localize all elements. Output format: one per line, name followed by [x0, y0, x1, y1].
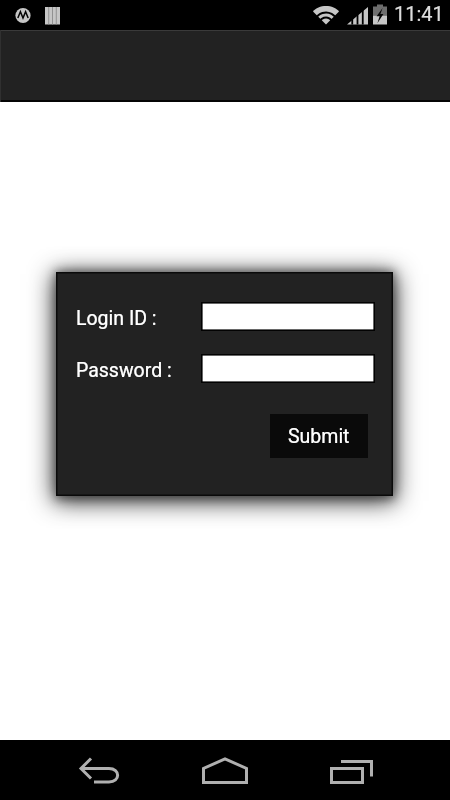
button[interactable]: Password input — [201, 354, 375, 383]
button[interactable]: Back — [0, 740, 150, 800]
button[interactable]: App bar — [0, 30, 450, 102]
staticText: Password : — [76, 359, 172, 382]
button[interactable]: Recent apps — [300, 740, 450, 800]
button[interactable]: Submit — [270, 414, 368, 458]
button[interactable]: Login ID input — [201, 302, 375, 331]
staticText: Submit — [288, 425, 350, 448]
staticText: 11:41 — [394, 2, 444, 25]
button[interactable]: Home — [150, 740, 300, 800]
staticText: Login ID : — [76, 307, 157, 330]
